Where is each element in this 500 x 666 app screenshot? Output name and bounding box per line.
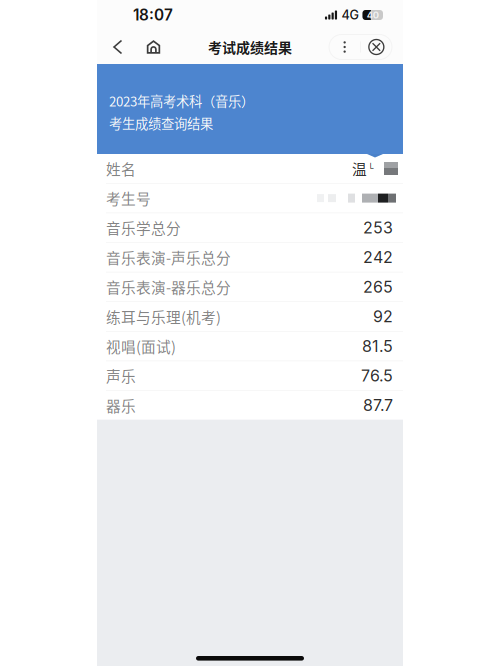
staticText: 40 — [367, 9, 379, 21]
staticText: 76.5 — [361, 366, 393, 385]
staticText: 视唱(面试) — [106, 335, 176, 357]
staticText: 姓名 — [106, 158, 136, 179]
staticText: 音乐表演-声乐总分 — [106, 247, 231, 268]
staticText: 温 — [352, 158, 367, 179]
staticText: 音乐表演-器乐总分 — [106, 276, 231, 297]
button[interactable]: Close — [361, 34, 392, 59]
staticText: 242 — [363, 248, 393, 267]
button[interactable]: Back — [105, 30, 131, 64]
staticText: 265 — [363, 277, 393, 297]
staticText: 练耳与乐理(机考) — [106, 306, 221, 327]
staticText: 81.5 — [362, 336, 393, 356]
staticText: 87.7 — [363, 396, 393, 415]
staticText: 声乐 — [106, 365, 136, 386]
staticText: 253 — [363, 218, 393, 237]
staticText: 考试成绩结果 — [208, 37, 292, 57]
staticText: 4G — [341, 7, 358, 23]
staticText: 92 — [373, 307, 393, 326]
staticText: 2023年高考术科（音乐） — [109, 91, 254, 110]
button[interactable]: More — [329, 34, 360, 59]
staticText: 考生成绩查询结果 — [109, 113, 213, 133]
staticText: 音乐学总分 — [106, 217, 181, 238]
staticText: └ — [368, 163, 374, 174]
staticText: 考生号 — [106, 187, 151, 209]
staticText: 18:07 — [133, 6, 173, 24]
button[interactable]: Home — [131, 30, 176, 64]
staticText: 器乐 — [106, 395, 136, 416]
